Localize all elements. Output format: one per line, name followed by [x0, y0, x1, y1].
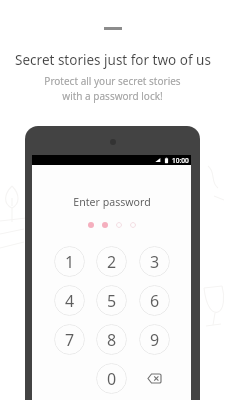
button[interactable]: Backspace [139, 363, 170, 394]
staticText: Enter password [73, 195, 151, 209]
staticText: 1 [65, 251, 75, 273]
staticText: 9 [150, 329, 160, 351]
button[interactable]: 8 [96, 324, 127, 355]
button[interactable]: 6 [139, 285, 170, 316]
staticText: 8 [107, 329, 117, 351]
staticText: 3 [150, 251, 160, 273]
button[interactable]: 2 [96, 246, 127, 277]
button[interactable]: 1 [54, 246, 85, 277]
staticText: 5 [107, 290, 117, 312]
staticText: Secret stories just for two of us [15, 51, 211, 69]
staticText: Protect all your secret stories with a p… [44, 74, 181, 103]
staticText: 7 [65, 329, 75, 351]
staticText: 4 [65, 290, 75, 312]
button[interactable]: 7 [54, 324, 85, 355]
button[interactable]: 3 [139, 246, 170, 277]
button[interactable]: 5 [96, 285, 127, 316]
staticText: 10:00 [172, 156, 189, 165]
button[interactable]: 9 [139, 324, 170, 355]
staticText: 6 [150, 290, 160, 312]
staticText: 0 [107, 368, 117, 390]
button[interactable]: 0 [96, 363, 127, 394]
staticText: 2 [107, 251, 117, 273]
button[interactable]: 4 [54, 285, 85, 316]
